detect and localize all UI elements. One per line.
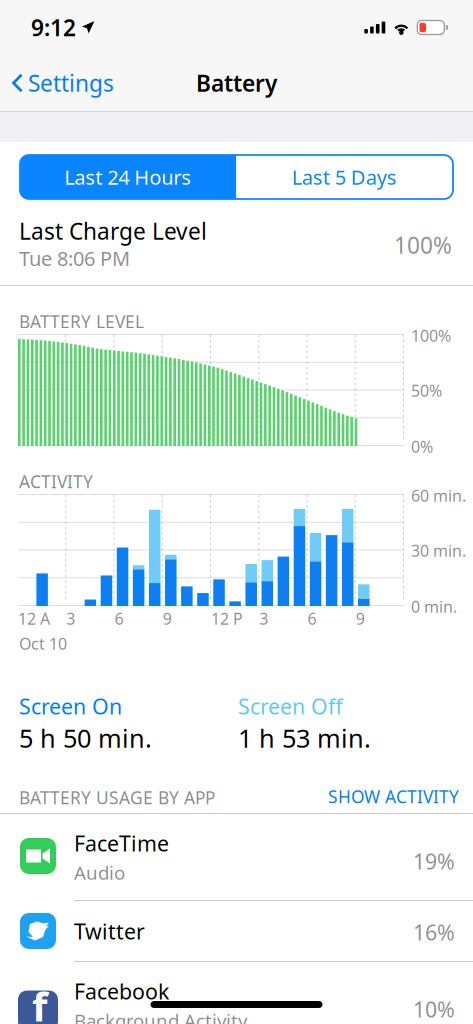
staticText: 12 A <box>18 608 50 629</box>
staticText: 30 min. <box>411 540 466 561</box>
staticText: Tue 8:06 PM <box>19 245 130 272</box>
staticText: BATTERY LEVEL <box>19 310 144 333</box>
staticText: 9 <box>356 608 365 629</box>
staticText: 9:12 <box>31 12 76 42</box>
staticText: Background Activity <box>74 1008 248 1024</box>
staticText: BATTERY USAGE BY APP <box>19 786 215 809</box>
button[interactable]: SHOW ACTIVITY <box>328 785 459 808</box>
staticText: 0% <box>411 436 433 457</box>
staticText: Last 5 Days <box>292 164 397 190</box>
button[interactable]: Last 24 Hours <box>20 155 236 199</box>
staticText: 50% <box>411 380 442 401</box>
staticText: Settings <box>28 68 114 98</box>
button[interactable]: Settings <box>0 57 126 109</box>
staticText: 19% <box>413 847 455 875</box>
staticText: 10% <box>413 995 455 1023</box>
staticText: Last Charge Level <box>19 216 207 246</box>
staticText: 60 min. <box>411 485 466 506</box>
staticText: 0 min. <box>411 596 457 617</box>
staticText: 3 <box>259 608 268 629</box>
staticText: 100% <box>394 230 452 260</box>
staticText: Last 24 Hours <box>64 164 191 190</box>
button[interactable]: FaceTime <box>0 814 473 901</box>
staticText: 12 P <box>211 608 243 629</box>
staticText: 3 <box>66 608 75 629</box>
staticText: 5 h 50 min. <box>19 721 152 755</box>
staticText: Screen On <box>19 692 122 720</box>
staticText: 6 <box>114 608 123 629</box>
staticText: Facebook <box>74 977 169 1005</box>
staticText: ACTIVITY <box>19 470 93 493</box>
button[interactable]: Twitter <box>0 901 473 961</box>
button[interactable]: Last 5 Days <box>236 155 453 199</box>
button[interactable]: f <box>0 962 473 1024</box>
staticText: Audio <box>74 860 125 885</box>
staticText: 9 <box>163 608 172 629</box>
staticText: f <box>32 979 47 1024</box>
staticText: Oct 10 <box>19 633 67 654</box>
staticText: 100% <box>411 325 451 346</box>
staticText: Battery <box>196 68 277 98</box>
staticText: FaceTime <box>74 829 169 857</box>
staticText: 6 <box>307 608 316 629</box>
staticText: Twitter <box>74 917 145 945</box>
staticText: SHOW ACTIVITY <box>328 785 459 808</box>
staticText: 1 h 53 min. <box>238 721 371 755</box>
staticText: Screen Off <box>238 692 343 720</box>
staticText: 16% <box>413 918 455 946</box>
